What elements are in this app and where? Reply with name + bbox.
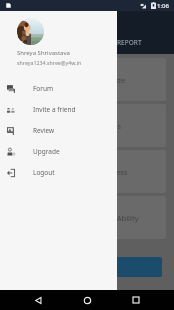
button[interactable]: Learning Ability <box>8 196 166 239</box>
button[interactable]: Review <box>0 120 117 141</box>
staticText: Invite a friend <box>33 105 76 114</box>
button[interactable]: Logout <box>0 162 117 183</box>
staticText: Learning Ability <box>71 213 151 223</box>
staticText: Upgrade <box>33 147 60 156</box>
staticText: Forum <box>33 84 54 93</box>
staticText: 1:06 <box>157 2 169 10</box>
button[interactable]: Forum <box>0 78 117 99</box>
staticText: Alertness <box>71 167 151 177</box>
staticText: shreya1234.shree@y4w.in <box>17 59 82 66</box>
button[interactable]: Home <box>77 290 97 310</box>
staticText: Review <box>33 126 55 135</box>
button[interactable]: Invite a friend <box>0 99 117 120</box>
button[interactable]: Recent apps <box>126 290 146 310</box>
staticText: REPORT <box>117 38 142 47</box>
button[interactable]: Focus <box>8 104 166 147</box>
button[interactable] <box>8 257 162 277</box>
button[interactable]: Alertness <box>8 150 166 193</box>
button[interactable]: Upgrade <box>0 141 117 162</box>
staticText: Focus <box>71 121 151 131</box>
button[interactable]: Attitude <box>8 58 166 101</box>
staticText: Logout <box>33 168 55 177</box>
staticText: Shreya Shrivastava <box>17 49 70 57</box>
button[interactable]: Back <box>28 290 48 310</box>
staticText: Attitude <box>71 75 151 85</box>
